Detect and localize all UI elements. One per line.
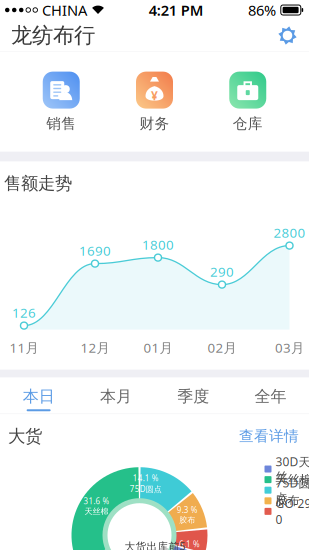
button[interactable]: 本月 [77, 378, 154, 411]
button[interactable]: 查看详情 [0, 414, 309, 550]
staticText: 2800 [273, 224, 305, 241]
staticText: 11月 [9, 339, 38, 356]
staticText: 天丝棉 [275, 472, 309, 487]
staticText: 天丝棉 [84, 506, 108, 516]
staticText: 龙纺布行 [11, 22, 95, 49]
staticText: 大货 [8, 426, 42, 447]
button[interactable]: 销售 [29, 72, 93, 133]
staticText: 本月 [100, 387, 132, 406]
staticText: 31.6 % [83, 496, 109, 506]
button[interactable]: 全年 [232, 378, 309, 411]
staticText: 仓库 [233, 115, 263, 133]
staticText: 03月 [275, 339, 304, 356]
staticText: 销售 [46, 115, 76, 133]
button[interactable]: 设置 [273, 21, 302, 50]
staticText: 查看详情 [239, 427, 299, 445]
staticText: 季度 [177, 387, 209, 406]
staticText: 30D天丝 [275, 454, 309, 484]
staticText: 财务 [139, 115, 169, 133]
staticText: 胶布 [179, 515, 195, 525]
staticText: 4:21 PM [149, 0, 204, 20]
staticText: ¥ [151, 88, 158, 103]
staticText: 75D圆点 [275, 475, 309, 505]
staticText: 02月 [207, 339, 236, 356]
staticText: 1800 [142, 236, 174, 253]
staticText: 胶布 [275, 493, 299, 508]
staticText: 75D圆点 [130, 484, 162, 494]
staticText: 1690 [79, 242, 111, 259]
staticText: 290 [210, 263, 234, 280]
staticText: 本日 [23, 387, 55, 406]
staticText: 6.1 % [179, 539, 200, 549]
staticText: CHINA [42, 0, 87, 20]
staticText: GO-290 [275, 495, 309, 527]
staticText: 01月 [143, 339, 172, 356]
staticText: 14.1 % [133, 473, 159, 483]
button[interactable]: 本日 [0, 378, 77, 411]
staticText: 大货出库前5 [124, 539, 185, 550]
button[interactable]: ¥ [122, 72, 186, 133]
staticText: 9.3 % [177, 505, 198, 515]
button[interactable]: 仓库 [216, 72, 280, 133]
staticText: 86% [248, 0, 276, 20]
staticText: 12月 [80, 339, 109, 356]
staticText: 全年 [254, 387, 286, 406]
button[interactable]: 季度 [154, 378, 232, 411]
staticText: 126 [12, 304, 36, 321]
staticText: 售额走势 [4, 173, 72, 194]
